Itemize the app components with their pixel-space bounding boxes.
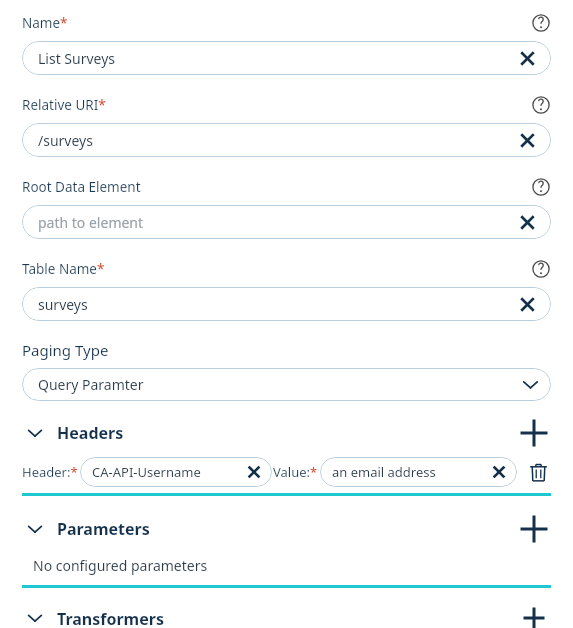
button[interactable]: Parameters [22,512,551,546]
button[interactable]: Delete [525,459,551,485]
button[interactable]: Headers [22,416,551,450]
button[interactable]: Paging Type dropdown [22,368,551,401]
button[interactable]: Help [531,177,551,197]
button[interactable]: Clear [514,45,541,72]
button[interactable]: Transformers [22,608,551,628]
button[interactable]: Clear [514,127,541,154]
button[interactable]: CA-API-Username [80,457,272,487]
staticText: Transformers [57,608,517,628]
button[interactable]: Add [517,608,551,628]
button[interactable]: Clear [242,460,266,484]
button[interactable]: Add [517,512,551,546]
staticText: Relative URI* [22,96,106,114]
button[interactable]: Clear [487,460,511,484]
button[interactable]: Clear [514,291,541,318]
staticText: Name* [22,14,68,32]
staticText: List Surveys [38,49,514,68]
button[interactable]: Help [531,13,551,33]
staticText: CA-API-Username [92,463,242,481]
staticText: No configured parameters [33,556,208,575]
staticText: Query Paramter [38,375,522,394]
staticText: Headers [57,422,517,444]
button[interactable]: Help [531,259,551,279]
button[interactable]: Help [531,95,551,115]
staticText: path to element [38,213,514,232]
button[interactable]: path to element [22,205,551,239]
staticText: Root Data Element [22,178,141,196]
staticText: Parameters [57,518,517,540]
staticText: Paging Type [22,340,109,360]
staticText: surveys [38,295,514,314]
button[interactable]: /surveys [22,123,551,157]
staticText: an email address [332,463,487,481]
button[interactable]: List Surveys [22,41,551,75]
staticText: Header:* [22,463,78,481]
staticText: Table Name* [22,260,105,278]
button[interactable]: an email address [320,457,517,487]
button[interactable]: surveys [22,287,551,321]
staticText: /surveys [38,131,514,150]
staticText: Value:* [273,463,318,481]
button[interactable]: Add [517,416,551,450]
button[interactable]: Clear [514,209,541,236]
